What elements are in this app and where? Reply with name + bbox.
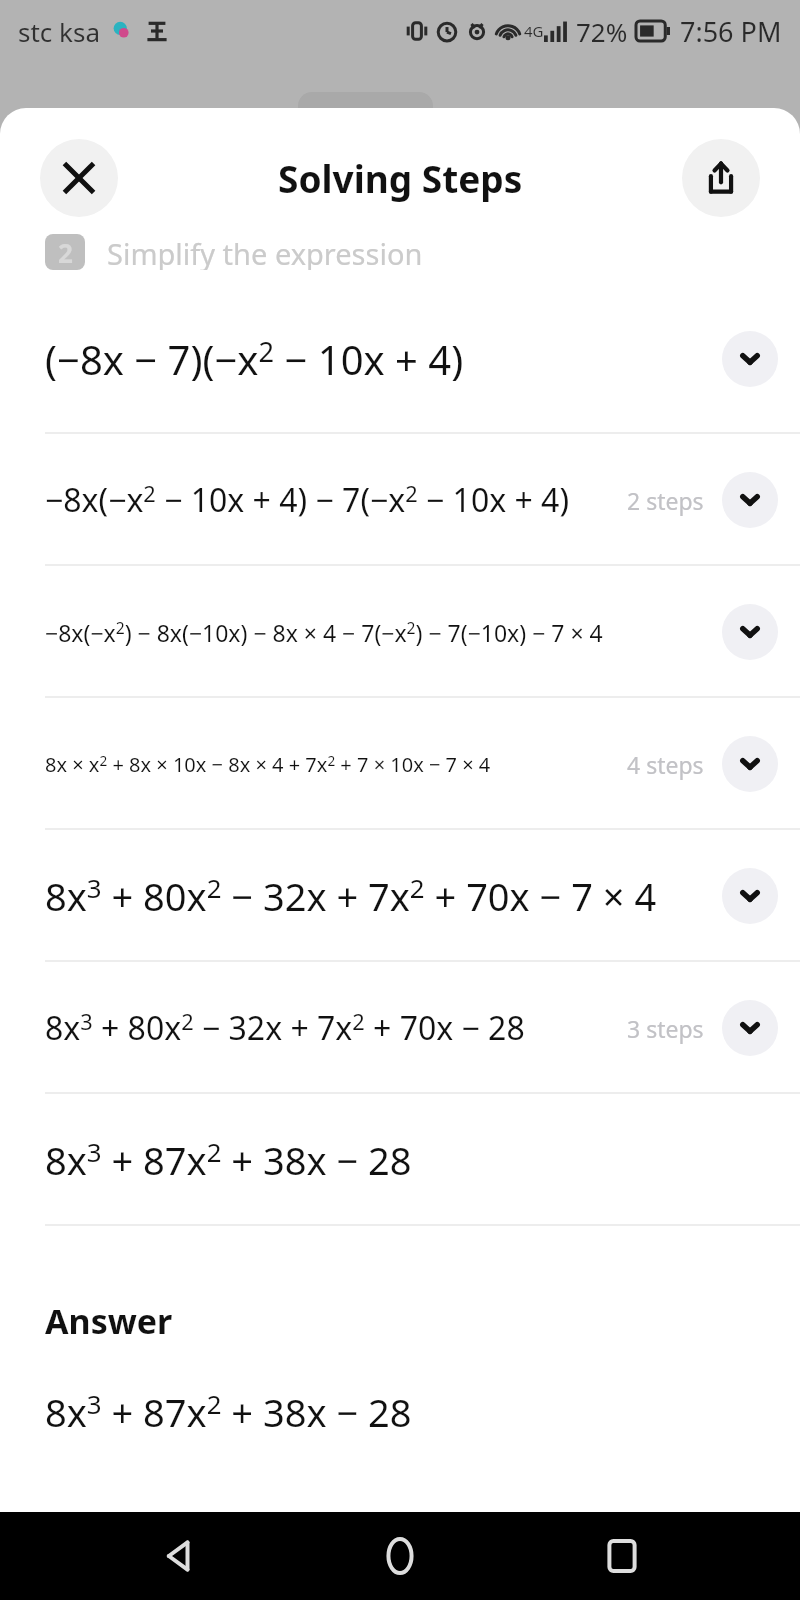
button[interactable]: 8x3 + 80x2 − 32x + 7x2 + 70x − 7 × 4 [0, 830, 800, 962]
staticText: −8x(−x2) − 8x(−10x) − 8x × 4 − 7(−x2) − … [45, 617, 714, 648]
staticText: 8x3 + 87x2 + 38x − 28 [45, 1134, 412, 1186]
button[interactable]: Expand step [722, 1000, 778, 1056]
button[interactable]: Expand step [722, 472, 778, 528]
staticText: 8x3 + 80x2 − 32x + 7x2 + 70x − 28 [45, 1006, 627, 1050]
button[interactable]: Home [357, 1513, 443, 1599]
button[interactable]: Expand step [722, 868, 778, 924]
button[interactable]: Back [136, 1513, 222, 1599]
staticText: Solving Steps [278, 153, 523, 203]
staticText: −8x(−x2 − 10x + 4) − 7(−x2 − 10x + 4) [45, 478, 627, 522]
button[interactable]: (−8x − 7)(−x2 − 10x + 4) [0, 284, 800, 434]
button[interactable]: Expand step [722, 736, 778, 792]
button[interactable]: 8x3 + 80x2 − 32x + 7x2 + 70x − 28 [0, 962, 800, 1094]
staticText: (−8x − 7)(−x2 − 10x + 4) [45, 332, 714, 386]
staticText: 3 steps [627, 1013, 704, 1044]
button[interactable]: 8x3 + 87x2 + 38x − 28 [0, 1094, 800, 1226]
staticText: Answer [45, 1298, 173, 1344]
staticText: 4G [524, 21, 544, 41]
staticText: 8x3 + 87x2 + 38x − 28 [45, 1386, 412, 1438]
staticText: 2 steps [627, 485, 704, 516]
button[interactable]: Recents [579, 1513, 665, 1599]
button[interactable]: Expand step [722, 604, 778, 660]
button[interactable]: Expand step [722, 331, 778, 387]
button[interactable]: −8x(−x2) − 8x(−10x) − 8x × 4 − 7(−x2) − … [0, 566, 800, 698]
staticText: 8x3 + 80x2 − 32x + 7x2 + 70x − 7 × 4 [45, 870, 714, 922]
staticText: 8x × x2 + 8x × 10x − 8x × 4 + 7x2 + 7 × … [45, 751, 627, 778]
staticText: 7:56 PM [680, 13, 782, 50]
staticText: stc ksa [18, 14, 101, 49]
button[interactable]: −8x(−x2 − 10x + 4) − 7(−x2 − 10x + 4) [0, 434, 800, 566]
button[interactable]: 8x × x2 + 8x × 10x − 8x × 4 + 7x2 + 7 × … [0, 698, 800, 830]
staticText: Simplify the expression [107, 234, 423, 270]
button[interactable]: Share [682, 139, 760, 217]
staticText: 72% [576, 14, 628, 49]
staticText: 2 [58, 235, 73, 270]
staticText: 4 steps [627, 749, 704, 780]
button[interactable]: Close [40, 139, 118, 217]
